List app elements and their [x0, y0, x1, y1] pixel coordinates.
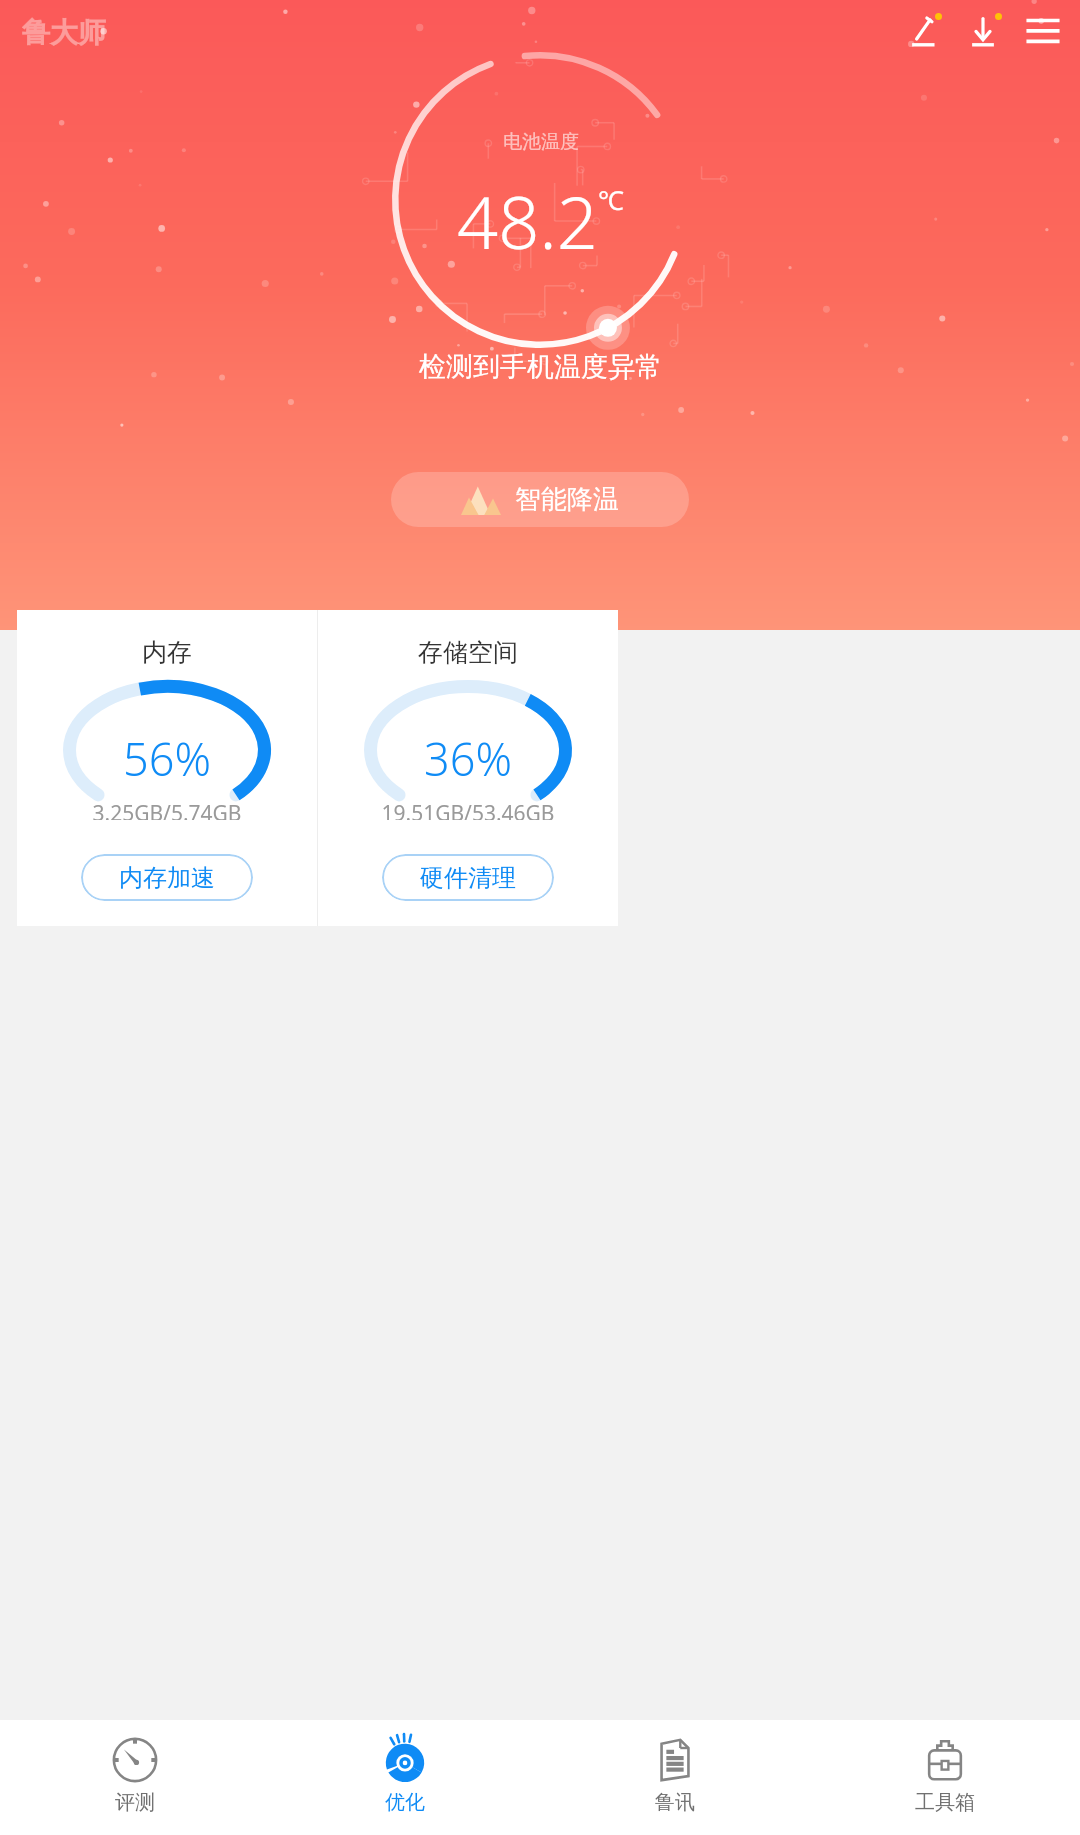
button[interactable]: 评测	[0, 1720, 270, 1835]
button[interactable]: 优化	[270, 1720, 540, 1835]
staticText: 鲁讯	[655, 1790, 695, 1815]
staticText: 19.51GB/53.46GB	[381, 799, 555, 820]
staticText: 智能降温	[515, 483, 619, 516]
staticText: 存储空间	[418, 637, 518, 668]
button[interactable]: 鲁讯	[540, 1720, 810, 1835]
staticText: 硬件清理	[420, 863, 516, 893]
button[interactable]: Download	[960, 9, 1006, 55]
staticText: 3.25GB/5.74GB	[92, 799, 242, 820]
staticText: 48.2	[457, 172, 598, 270]
staticText: 电池温度	[503, 130, 579, 154]
button[interactable]: 硬件清理	[382, 854, 554, 901]
staticText: 56%	[123, 728, 211, 789]
button[interactable]: Edit	[900, 9, 946, 55]
staticText: 内存加速	[119, 863, 215, 893]
button[interactable]: 智能降温	[391, 472, 689, 527]
staticText: 36%	[424, 728, 512, 789]
staticText: 评测	[115, 1790, 155, 1815]
button[interactable]: Menu	[1020, 9, 1066, 55]
staticText: 内存	[142, 637, 192, 668]
button[interactable]: 内存加速	[81, 854, 253, 901]
button[interactable]: 工具箱	[810, 1720, 1080, 1835]
staticText: 检测到手机温度异常	[419, 350, 662, 384]
staticText: 鲁大师	[22, 15, 106, 50]
staticText: 优化	[385, 1790, 425, 1815]
staticText: 工具箱	[915, 1790, 975, 1815]
staticText: ℃	[598, 182, 624, 217]
